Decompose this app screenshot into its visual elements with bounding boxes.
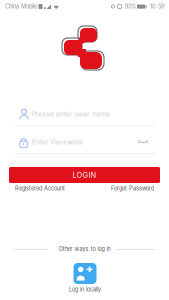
staticText: China Mobile — [5, 3, 37, 10]
button[interactable]: Please enter user name — [14, 103, 155, 126]
button[interactable]: Show password — [138, 139, 148, 144]
button[interactable]: Enter Password — [14, 131, 155, 154]
button[interactable]: Log in locally — [60, 263, 110, 293]
button[interactable]: LOGIN — [9, 167, 160, 183]
staticText: Log in locally — [69, 286, 101, 293]
staticText: Other ways to log in — [58, 246, 110, 252]
staticText: LOGIN — [72, 170, 96, 179]
staticText: Please enter user name — [32, 110, 110, 118]
staticText: 93% — [125, 3, 136, 10]
button[interactable]: Registered Account — [15, 185, 65, 192]
button[interactable]: Forget Password — [111, 185, 154, 192]
staticText: 10:59 — [150, 3, 164, 10]
staticText: Registered Account — [15, 185, 65, 192]
staticText: Enter Password — [32, 138, 82, 146]
staticText: Forget Password — [111, 185, 154, 192]
